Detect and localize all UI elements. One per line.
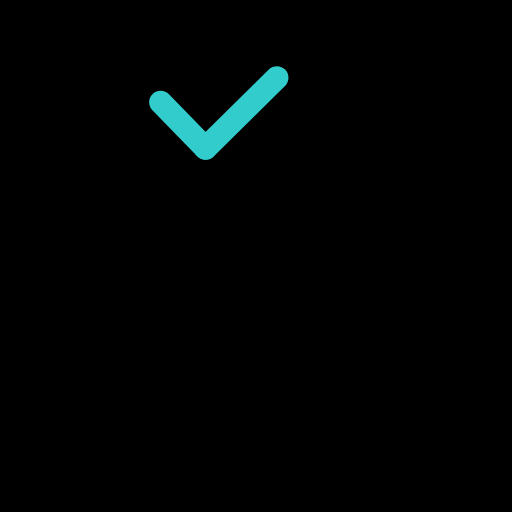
button[interactable]: Confirmed <box>143 60 294 166</box>
